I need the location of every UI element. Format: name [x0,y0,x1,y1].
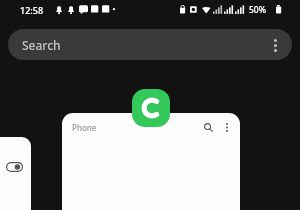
button[interactable]: Phone [62,113,240,210]
button[interactable]: More options [219,119,235,135]
button[interactable]: More options [264,34,286,56]
button[interactable]: Search contacts [200,119,216,135]
button[interactable] [0,137,31,210]
staticText: Search [22,37,61,53]
staticText: Phone [72,122,97,133]
button[interactable]: Search [8,29,292,60]
staticText: 12:58 [20,4,44,16]
button[interactable]: Phone app icon [132,89,170,127]
staticText: 50% [249,4,266,16]
